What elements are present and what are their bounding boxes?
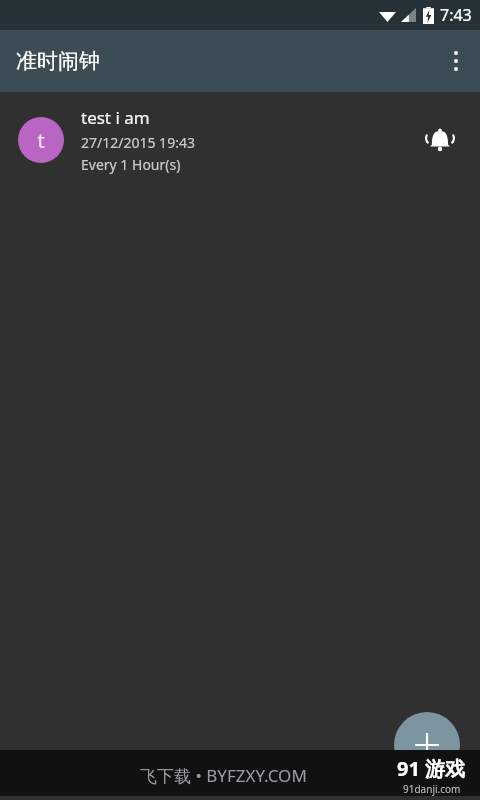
staticText: 7:43 <box>440 4 472 26</box>
staticText: t <box>37 127 45 154</box>
staticText: 27/12/2015 19:43 <box>81 133 195 152</box>
staticText: 飞下载 • BYFZXY.COM <box>140 764 307 787</box>
button[interactable]: Add alarm <box>394 712 460 778</box>
staticText: 91danji.com <box>403 782 461 796</box>
button[interactable]: More options <box>432 37 480 85</box>
staticText: test i am <box>81 106 150 129</box>
staticText: Every 1 Hour(s) <box>81 155 181 174</box>
staticText: 准时闹钟 <box>16 48 100 74</box>
staticText: 91 游戏 <box>397 755 466 782</box>
button[interactable]: Alarm enabled <box>416 116 464 164</box>
button[interactable]: t <box>0 92 480 188</box>
